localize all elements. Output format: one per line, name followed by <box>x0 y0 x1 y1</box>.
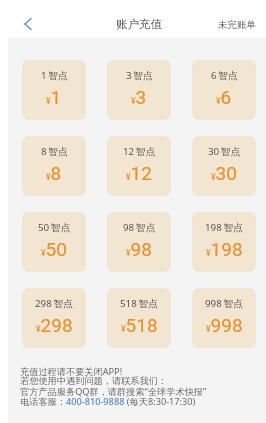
staticText: 298 智点 <box>35 297 74 310</box>
staticText: 998 智点 <box>205 297 244 310</box>
button[interactable]: 50 智点 <box>22 212 86 272</box>
staticText: 未完账单 <box>218 19 256 31</box>
button[interactable]: 12 智点 <box>107 136 171 196</box>
staticText: 1 智点 <box>41 69 68 82</box>
staticText: ¥30 <box>211 162 237 184</box>
button[interactable]: 6 智点 <box>192 60 256 120</box>
staticText: ¥50 <box>41 238 67 260</box>
staticText: ¥198 <box>206 238 243 260</box>
button[interactable]: 1 智点 <box>22 60 86 120</box>
staticText: 账户充值 <box>116 17 162 31</box>
button[interactable]: 518 智点 <box>107 288 171 348</box>
staticText: 30 智点 <box>208 145 241 158</box>
staticText: 官方产品服务QQ群，请群搜索“全球学术快报” <box>20 385 207 398</box>
staticText: 12 智点 <box>123 145 156 158</box>
staticText: ¥998 <box>206 314 243 336</box>
button[interactable]: 30 智点 <box>192 136 256 196</box>
staticText: 8 智点 <box>41 145 68 158</box>
button[interactable]: 未完账单 <box>204 10 266 38</box>
staticText: 50 智点 <box>38 221 71 234</box>
staticText: ¥8 <box>46 162 62 184</box>
staticText: 6 智点 <box>211 69 238 82</box>
staticText: ¥298 <box>36 314 73 336</box>
staticText: ¥3 <box>131 86 147 108</box>
staticText: 198 智点 <box>205 221 244 234</box>
staticText: ¥98 <box>126 238 152 260</box>
button[interactable]: 98 智点 <box>107 212 171 272</box>
staticText: 充值过程请不要关闭APP! <box>20 365 123 378</box>
button[interactable]: 998 智点 <box>192 288 256 348</box>
staticText: ¥6 <box>216 86 232 108</box>
button[interactable]: Back <box>14 10 42 38</box>
staticText: 若您使用中遇到问题，请联系我们： <box>20 375 167 387</box>
staticText: ¥12 <box>126 162 152 184</box>
staticText: ¥1 <box>46 86 62 108</box>
button[interactable]: 3 智点 <box>107 60 171 120</box>
staticText: 518 智点 <box>120 297 159 310</box>
button[interactable]: 8 智点 <box>22 136 86 196</box>
staticText: ¥518 <box>121 314 158 336</box>
staticText: 98 智点 <box>123 221 156 234</box>
button[interactable]: 298 智点 <box>22 288 86 348</box>
staticText: 3 智点 <box>126 69 153 82</box>
button[interactable]: 电话客服：400-810-9888 (每天8:30-17:30) <box>20 395 196 408</box>
button[interactable]: 198 智点 <box>192 212 256 272</box>
